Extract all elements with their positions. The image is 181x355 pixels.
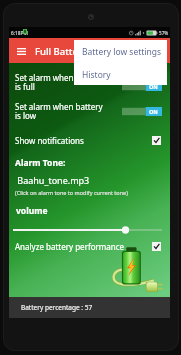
staticText: ON	[149, 83, 158, 90]
staticText: (Click on alarm tone to modify current t…	[15, 189, 128, 196]
staticText: Baahu_tone.mp3	[15, 174, 90, 186]
staticText: Battery percentage : 57	[21, 303, 93, 312]
staticText: Set alarm when battery is full	[15, 72, 103, 93]
button[interactable]: Toggle alarm	[122, 107, 162, 116]
button[interactable]: Show notifications	[9, 133, 170, 147]
staticText: Analyze battery performance	[15, 241, 125, 252]
button[interactable]: Baahu_tone.mp3	[9, 173, 170, 187]
button[interactable]: Set alarm when battery is low	[9, 97, 170, 125]
staticText: Alarm Tone:	[15, 157, 66, 169]
staticText: 6:18PM	[11, 30, 28, 37]
staticText: ON	[149, 108, 158, 115]
staticText: History	[82, 69, 111, 81]
button[interactable]: Battery low settings	[74, 40, 167, 64]
staticText: 57%	[159, 30, 169, 36]
button[interactable]: Volume slider	[9, 225, 170, 235]
button[interactable]: Checkbox	[152, 136, 161, 145]
button[interactable]: History	[74, 64, 167, 85]
button[interactable]: Analyze battery performance	[9, 239, 170, 253]
staticText: Set alarm when battery is low	[15, 101, 103, 122]
button[interactable]: Set alarm when battery is full	[9, 68, 170, 96]
button[interactable]: Checkbox	[152, 242, 161, 251]
staticText: volume	[16, 205, 48, 217]
staticText: Battery low settings	[82, 46, 162, 58]
staticText: Show notifications	[15, 135, 84, 146]
button[interactable]: Navigation menu	[12, 39, 30, 64]
button[interactable]: Toggle alarm	[122, 82, 162, 91]
staticText: Full Battery Alarm	[35, 45, 117, 58]
